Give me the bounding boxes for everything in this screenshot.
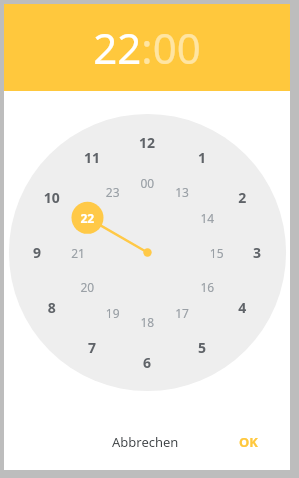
staticText: OK	[239, 433, 258, 451]
button[interactable]: Clock face, 22 hours selected	[4, 91, 290, 414]
button[interactable]: OK	[229, 425, 268, 459]
button[interactable]: Abbrechen	[102, 425, 189, 459]
button[interactable]: 22:00	[4, 4, 290, 91]
staticText: 22:00	[93, 19, 201, 76]
staticText: Abbrechen	[112, 433, 179, 451]
